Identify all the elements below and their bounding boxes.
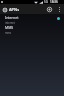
button[interactable]: Selected APN — [54, 15, 62, 23]
button[interactable]: Add APN — [45, 5, 53, 13]
button[interactable]: More options — [55, 5, 63, 13]
staticText: 5G — [44, 0, 48, 4]
staticText: mms — [5, 31, 12, 34]
staticText: APNs — [9, 7, 20, 12]
staticText: 18:36 — [50, 0, 58, 4]
staticText: Internet — [5, 15, 19, 20]
button[interactable]: Internet — [0, 14, 64, 24]
staticText: internet — [5, 21, 15, 24]
staticText: MMS — [5, 25, 14, 30]
button[interactable]: MMS — [0, 24, 64, 34]
button[interactable]: Settings — [1, 6, 8, 13]
